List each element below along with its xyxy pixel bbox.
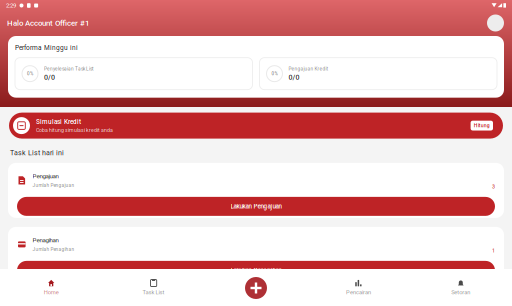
staticText: 1 [492, 248, 495, 254]
staticText: Penyelesaian Task List [44, 66, 94, 72]
staticText: Pencairan [346, 289, 371, 295]
staticText: Lakukan Pengajuan [230, 203, 281, 210]
button[interactable]: Profile [487, 14, 504, 31]
staticText: Task List hari ini [10, 149, 64, 157]
staticText: 3 [492, 184, 495, 190]
button[interactable]: Add [245, 277, 267, 299]
staticText: Pengajuan [33, 173, 59, 180]
staticText: Pengajuan Kredit [288, 66, 328, 72]
button[interactable]: Task List [102, 279, 205, 295]
button[interactable]: Simulasi Kredit [9, 113, 503, 139]
button[interactable]: Pencairan [307, 279, 410, 295]
button[interactable]: Home [0, 279, 102, 295]
staticText: Jumlah Pengajuan [33, 183, 75, 188]
staticText: 0/0 [44, 73, 55, 81]
staticText: Lakukan Penagihan [230, 267, 281, 274]
staticText: 2:29 [6, 2, 16, 9]
staticText: 0/0 [288, 73, 299, 81]
staticText: Home [44, 289, 59, 295]
staticText: Task List [143, 289, 165, 295]
staticText: Jumlah Penagihan [33, 247, 75, 252]
button[interactable]: Lakukan Penagihan [17, 261, 495, 280]
staticText: Performa Minggu ini [15, 44, 78, 52]
staticText: Setoran [451, 289, 470, 295]
button[interactable]: Setoran [410, 279, 512, 295]
staticText: 0% [27, 71, 33, 76]
staticText: Simulasi Kredit [36, 118, 81, 126]
staticText: Halo Account Officer #1 [7, 18, 89, 28]
staticText: Coba hitung simulasi kredit anda [36, 127, 113, 133]
staticText: Hitung [474, 123, 490, 128]
staticText: Penagihan [33, 237, 59, 244]
staticText: 0% [271, 71, 277, 76]
button[interactable]: Lakukan Pengajuan [17, 197, 495, 216]
